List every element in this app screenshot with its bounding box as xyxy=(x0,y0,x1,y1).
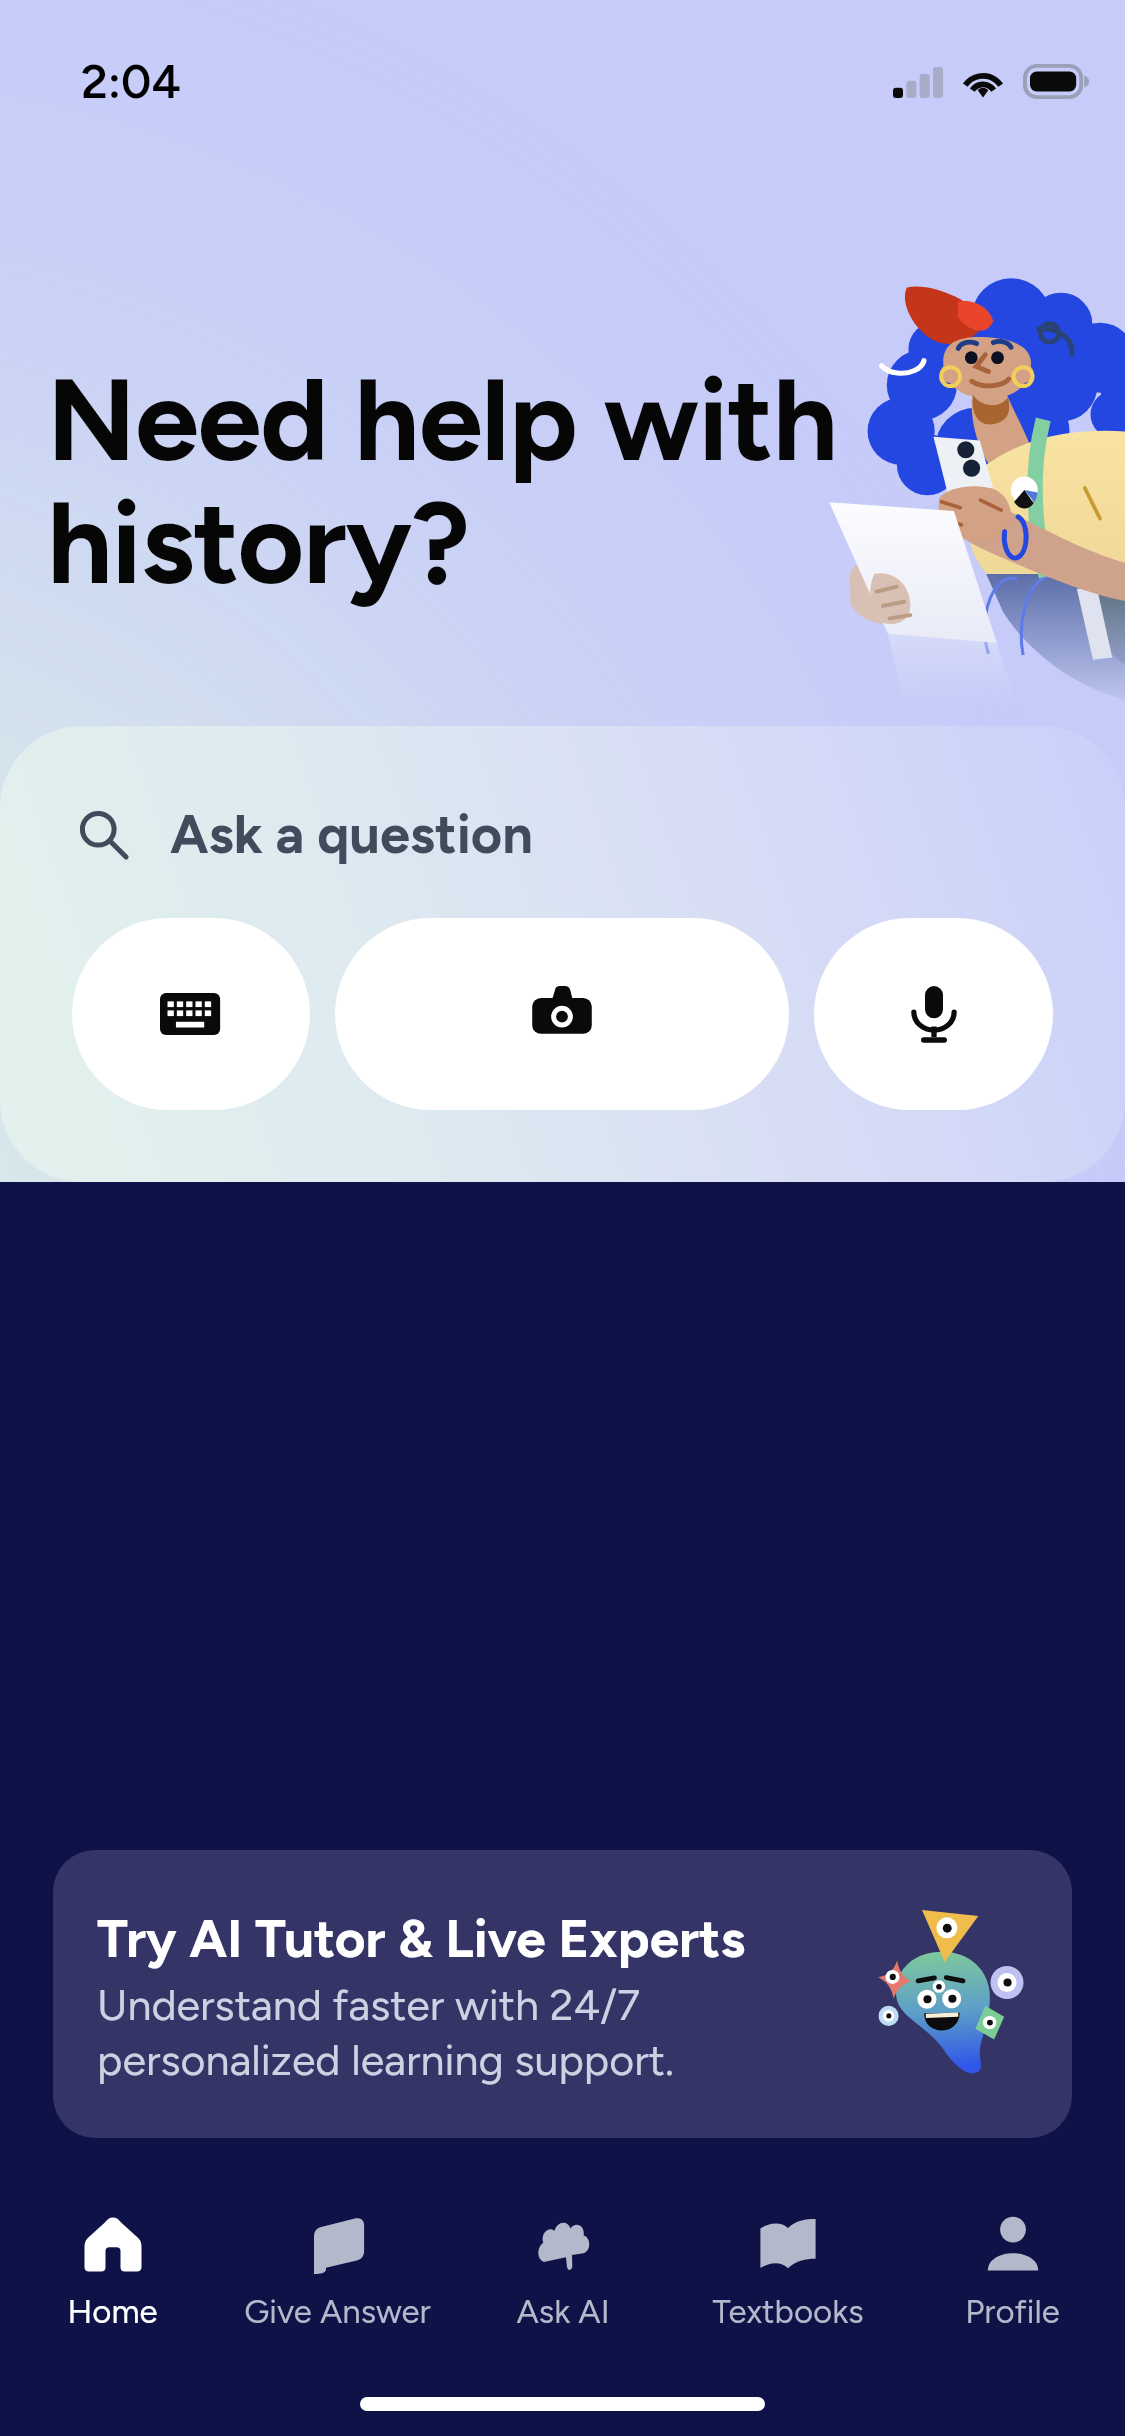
button[interactable]: Textbooks xyxy=(675,2205,900,2332)
button[interactable]: Home xyxy=(0,2205,225,2332)
button[interactable]: Ask AI xyxy=(450,2205,675,2332)
button[interactable]: Ask a question xyxy=(80,802,1045,867)
staticText: Need help with history? xyxy=(47,351,838,611)
staticText: Home xyxy=(67,2292,158,2332)
staticText: Try AI Tutor & Live Experts xyxy=(97,1907,746,1971)
staticText: Profile xyxy=(965,2292,1060,2332)
staticText: Ask a question xyxy=(170,802,533,867)
button[interactable]: Microphone xyxy=(814,918,1053,1110)
staticText: Ask AI xyxy=(516,2292,610,2332)
staticText: Textbooks xyxy=(712,2292,864,2332)
button[interactable]: Give Answer xyxy=(225,2205,450,2332)
staticText: Understand faster with 24/7 personalized… xyxy=(97,1979,674,2085)
button[interactable]: Camera xyxy=(335,918,789,1110)
staticText: 2:04 xyxy=(81,53,181,109)
button[interactable]: Keyboard xyxy=(72,918,310,1110)
staticText: Give Answer xyxy=(244,2292,431,2332)
button[interactable]: Try AI Tutor & Live Experts xyxy=(53,1850,1072,2138)
button[interactable]: Profile xyxy=(900,2205,1125,2332)
